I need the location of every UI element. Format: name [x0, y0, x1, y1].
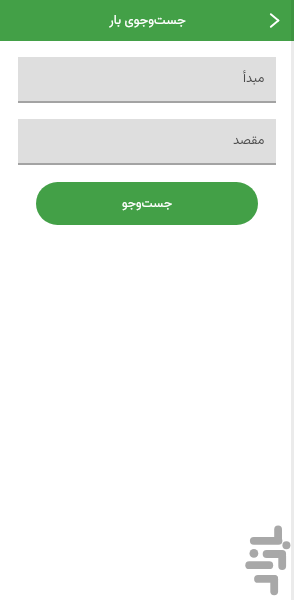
staticText: مبدأ: [243, 69, 265, 89]
button[interactable]: مبدأ: [18, 57, 276, 101]
staticText: جست‌وجو: [122, 194, 173, 214]
staticText: جست‌وجوی بار: [109, 11, 186, 31]
staticText: مقصد: [233, 131, 265, 151]
button[interactable]: Back: [254, 0, 294, 41]
button[interactable]: مقصد: [18, 119, 276, 163]
button[interactable]: جست‌وجو: [36, 182, 258, 225]
